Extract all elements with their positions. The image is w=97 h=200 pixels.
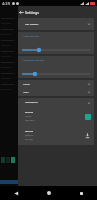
staticText: Night <box>23 91 29 94</box>
button[interactable]: Download translation <box>84 132 91 139</box>
button[interactable]: Bengali <box>18 126 94 145</box>
staticText: Bengali <box>25 111 34 114</box>
button[interactable]: Night <box>18 88 94 96</box>
staticText: লেখক নাম <box>25 115 32 118</box>
staticText: Settings <box>25 10 39 15</box>
staticText: অনুবাদ সংকলন <box>25 119 35 122</box>
button[interactable]: Translations <box>18 98 94 107</box>
staticText: Bengali <box>25 130 34 133</box>
button[interactable]: Recents <box>65 186 97 200</box>
staticText: বাংলা অনুবাদ <box>25 138 33 141</box>
staticText: মুহিউদ্দীন খান <box>25 134 34 137</box>
staticText: Theme <box>23 83 31 86</box>
staticText: Translations <box>25 101 38 104</box>
button[interactable]: Selected translation <box>85 114 91 120</box>
button[interactable]: Theme <box>18 80 94 88</box>
staticText: Arabic font size <box>23 35 39 38</box>
button[interactable]: Back <box>0 186 33 200</box>
button[interactable]: Back <box>18 6 25 18</box>
button[interactable]: App Settings <box>18 18 94 30</box>
staticText: 4:39 <box>2 1 10 6</box>
button[interactable]: Arabic font size <box>18 32 94 54</box>
staticText: App Settings <box>25 23 39 26</box>
staticText: Translation font size <box>23 59 44 62</box>
button[interactable]: Home <box>33 186 65 200</box>
button[interactable]: Translation font size <box>18 56 94 78</box>
button[interactable]: Bengali <box>18 107 94 126</box>
